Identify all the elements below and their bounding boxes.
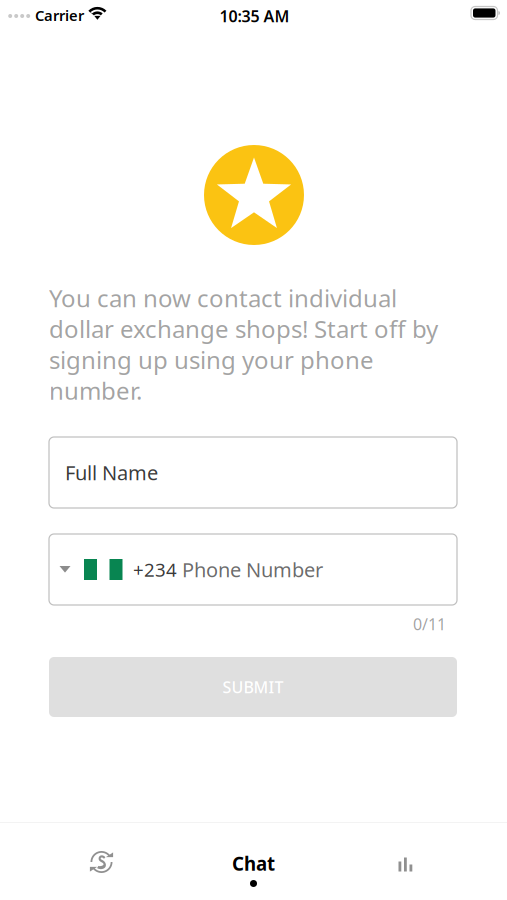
button[interactable]: Chat [177, 823, 329, 900]
button[interactable]: SUBMIT [49, 657, 457, 717]
staticText: Phone Number [182, 556, 323, 583]
staticText: +234 [133, 557, 177, 582]
staticText: Chat [232, 851, 275, 876]
staticText: Full Name [65, 459, 158, 486]
staticText: 10:35 AM [219, 5, 289, 27]
staticText: You can now contact individual dollar ex… [49, 282, 438, 406]
staticText: 0/11 [413, 613, 446, 635]
staticText: SUBMIT [222, 676, 283, 698]
button[interactable]: Exchange [25, 823, 177, 900]
staticText: Carrier [35, 6, 84, 25]
button[interactable]: Statistics [329, 823, 481, 900]
